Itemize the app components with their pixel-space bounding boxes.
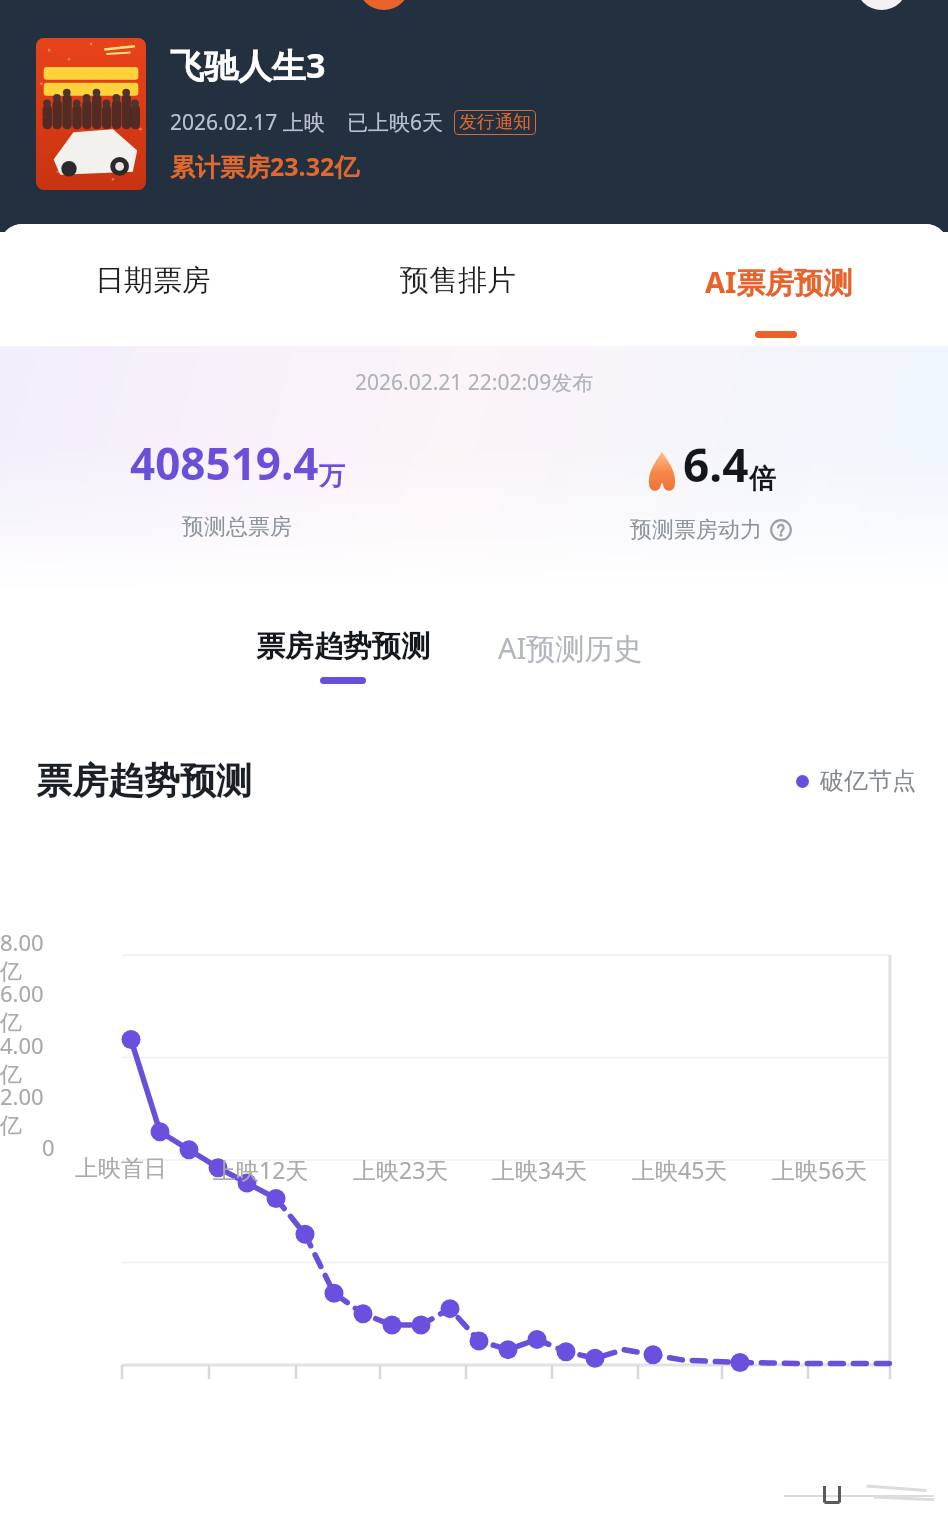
button[interactable]: 预测票房动力: [628, 516, 794, 544]
button[interactable]: AI预测历史: [494, 626, 647, 670]
staticText: 万: [319, 460, 345, 493]
staticText: 破亿节点: [820, 766, 916, 796]
button[interactable]: 票房趋势预测: [252, 626, 434, 667]
staticText: AI票房预测: [705, 262, 853, 302]
staticText: 上映12天: [213, 1154, 309, 1185]
staticText: AI预测历史: [498, 628, 643, 668]
staticText: 日期票房: [95, 262, 211, 299]
staticText: 倍: [749, 462, 776, 496]
staticText: 预测总票房: [182, 513, 292, 541]
staticText: 上映56天: [772, 1154, 868, 1185]
staticText: 6.4: [683, 433, 749, 496]
staticText: 预测票房动力: [630, 516, 762, 544]
staticText: 上映23天: [353, 1154, 449, 1185]
staticText: 6.00亿: [0, 978, 55, 1037]
staticText: 0: [42, 1132, 55, 1162]
staticText: 飞驰人生3: [170, 42, 326, 88]
staticText: 票房趋势预测: [36, 758, 252, 803]
staticText: 预售排片: [400, 262, 516, 299]
staticText: 2.00亿: [0, 1081, 55, 1140]
staticText: 累计票房23.32亿: [170, 149, 360, 183]
staticText: 上映首日: [75, 1154, 167, 1183]
button[interactable]: AI票房预测: [693, 258, 865, 306]
button[interactable]: 电影海报: [36, 38, 146, 190]
staticText: 8.00亿: [0, 927, 55, 986]
button[interactable]: 日期票房: [83, 258, 223, 303]
staticText: 票房趋势预测: [256, 628, 430, 665]
staticText: 2026.02.17 上映: [170, 108, 325, 137]
staticText: 4.00亿: [0, 1030, 55, 1089]
staticText: 408519.4: [130, 433, 319, 493]
staticText: 发行通知: [459, 111, 531, 134]
staticText: 上映45天: [632, 1154, 728, 1185]
button[interactable]: 发行通知: [454, 110, 536, 135]
staticText: 已上映6天: [347, 108, 444, 137]
button[interactable]: 预售排片: [388, 258, 528, 303]
staticText: 2026.02.21 22:02:09发布: [355, 368, 594, 397]
staticText: 上映34天: [492, 1154, 588, 1185]
